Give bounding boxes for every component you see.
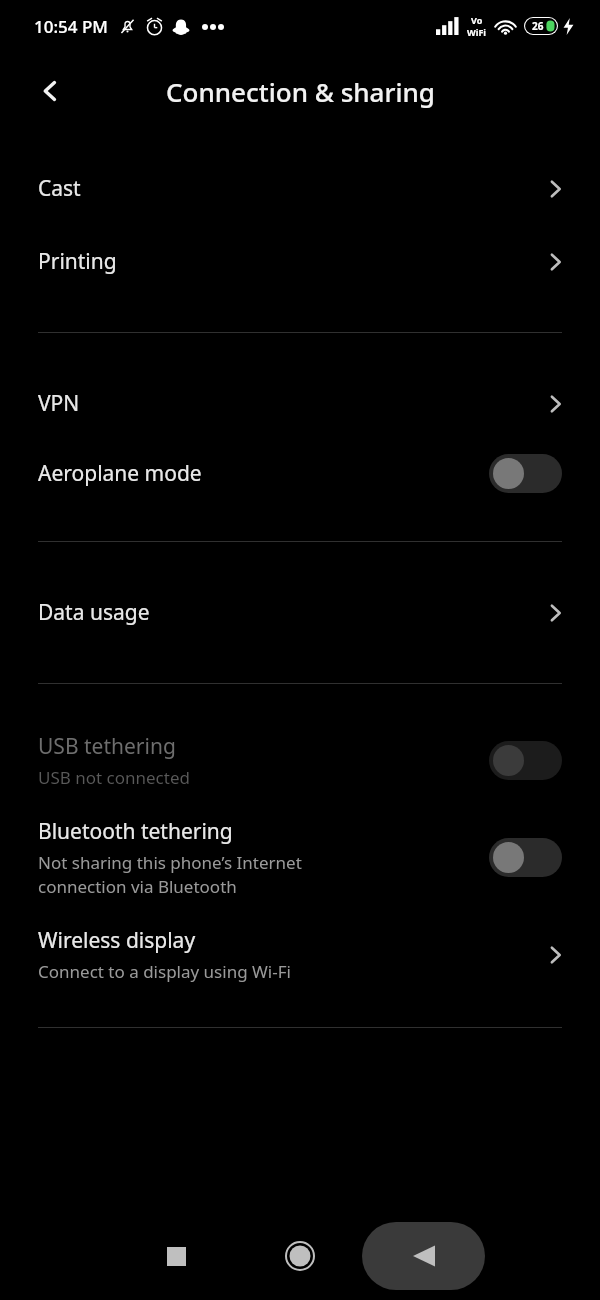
staticText: USB not connected — [38, 766, 190, 789]
button[interactable]: Printing — [0, 225, 600, 298]
staticText: Connection & sharing — [166, 74, 435, 109]
staticText: VPN — [38, 389, 80, 418]
staticText: Aeroplane mode — [38, 459, 202, 488]
staticText: Vo — [471, 14, 483, 26]
staticText: Data usage — [38, 598, 150, 627]
button[interactable]: VPN — [0, 367, 600, 440]
staticText: Printing — [38, 247, 117, 276]
button[interactable]: Data usage — [0, 576, 600, 649]
staticText: 26 — [532, 19, 544, 33]
button[interactable]: Bluetooth tethering — [0, 803, 600, 912]
staticText: Not sharing this phone’s Internet connec… — [38, 851, 302, 898]
button[interactable]: Aeroplane mode — [0, 440, 600, 507]
staticText: Bluetooth tethering — [38, 817, 233, 846]
staticText: Connect to a display using Wi-Fi — [38, 960, 291, 983]
button[interactable]: Toggle — [489, 838, 562, 877]
button[interactable]: Back — [362, 1222, 485, 1290]
button[interactable]: Back — [26, 67, 74, 115]
button[interactable]: Recent apps — [146, 1226, 206, 1286]
staticText: Wireless display — [38, 926, 196, 955]
button[interactable]: Cast — [0, 152, 600, 225]
button[interactable]: Toggle — [489, 741, 562, 780]
staticText: 10:54 PM — [34, 15, 108, 38]
staticText: USB tethering — [38, 732, 176, 761]
button[interactable]: Wireless display — [0, 912, 600, 997]
button[interactable]: USB tethering — [0, 718, 600, 803]
button[interactable]: Toggle — [489, 454, 562, 493]
button[interactable]: Home — [270, 1226, 330, 1286]
staticText: Cast — [38, 174, 81, 203]
staticText: WiFi — [467, 26, 487, 38]
